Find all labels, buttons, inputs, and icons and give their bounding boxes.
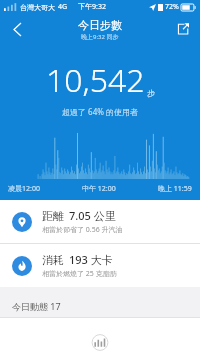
staticText: 步 (147, 88, 155, 98)
button[interactable]: 距離 (0, 200, 200, 243)
staticText: 凌晨12:00 (8, 184, 40, 194)
staticText: 今日步數 (78, 18, 122, 32)
button[interactable]: 統計 (85, 330, 115, 355)
staticText: 晚上 11:59 (158, 184, 192, 194)
staticText: 4G (58, 2, 68, 12)
staticText: 相當於節省了 0.56 升汽油 (42, 225, 123, 235)
staticText: 今日動態 17 (12, 300, 61, 312)
button[interactable]: Back (0, 14, 34, 44)
staticText: 消耗 (42, 253, 64, 267)
staticText: 下午9:32 (78, 2, 106, 12)
button[interactable]: Share (166, 14, 200, 44)
staticText: 距離 (42, 209, 64, 223)
button[interactable]: 消耗 (0, 244, 200, 287)
staticText: 中午 12:00 (82, 184, 116, 194)
staticText: 7.05 公里 (69, 208, 116, 223)
staticText: 相當於燃燒了 25 克脂肪 (42, 269, 117, 279)
staticText: 晚上9:32 同步 (81, 33, 119, 41)
staticText: 193 大卡 (69, 252, 113, 267)
staticText: 10,542 (46, 58, 145, 102)
staticText: 台灣大哥大 (20, 3, 55, 12)
staticText: 72% (165, 2, 179, 12)
staticText: 超過了 64% 的使用者 (0, 106, 200, 117)
